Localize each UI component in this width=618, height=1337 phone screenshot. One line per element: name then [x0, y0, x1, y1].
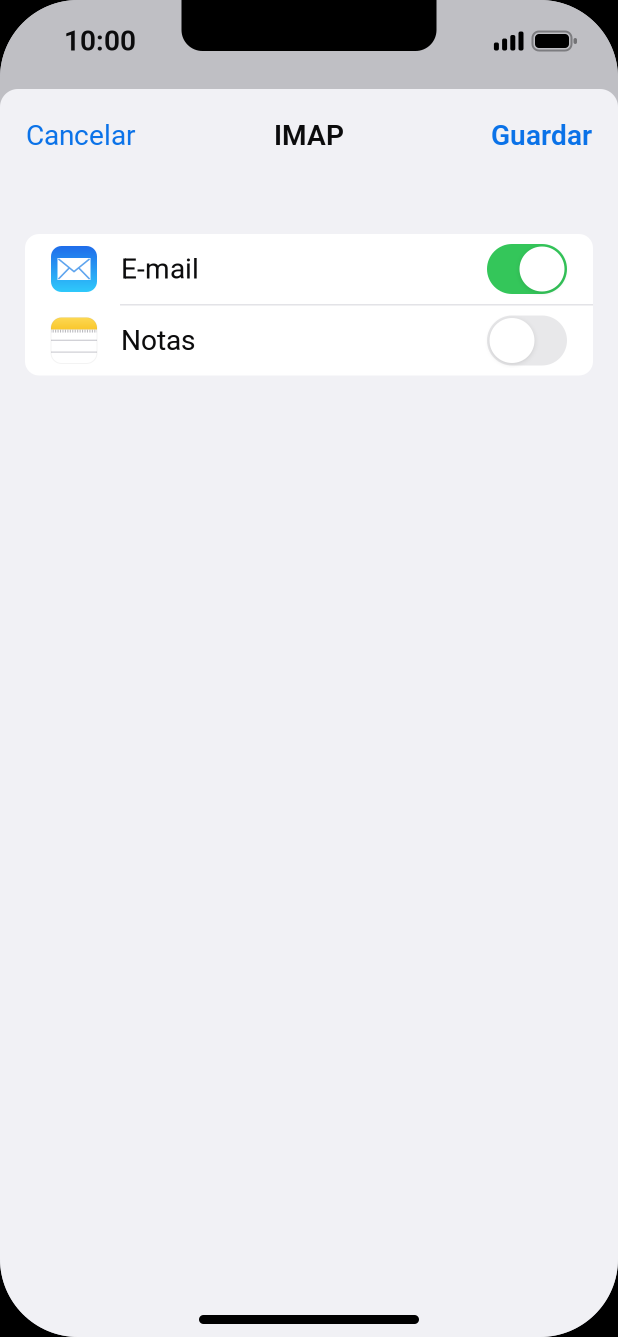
button[interactable]: Guardar — [479, 109, 604, 162]
staticText: IMAP — [274, 119, 344, 152]
staticText: E-mail — [121, 253, 199, 285]
staticText: Guardar — [491, 119, 592, 152]
button[interactable]: Cancelar — [14, 109, 147, 162]
staticText: Cancelar — [26, 119, 135, 152]
staticText: 10:00 — [64, 25, 136, 57]
staticText: Notas — [121, 324, 195, 357]
button[interactable]: E-mail — [25, 234, 593, 304]
button[interactable]: Notas — [25, 305, 593, 375]
